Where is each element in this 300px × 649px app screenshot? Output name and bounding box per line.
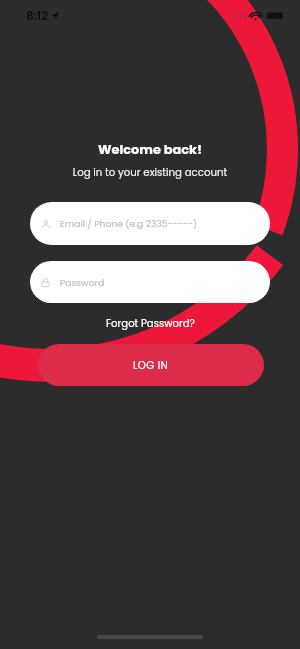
staticText: Log in to your existing account	[0, 165, 300, 179]
button[interactable]: LOG IN	[38, 344, 264, 386]
staticText: LOG IN	[133, 358, 169, 372]
button[interactable]: Password	[30, 261, 270, 303]
staticText: Welcome back!	[0, 140, 300, 158]
staticText: 8:12	[26, 7, 49, 24]
button[interactable]: Email / Phone (e.g 2335-----)	[30, 202, 270, 245]
other: Location	[52, 12, 59, 19]
staticText: Password	[60, 276, 105, 289]
button[interactable]: Forgot Password?	[100, 312, 201, 334]
staticText: Email / Phone (e.g 2335-----)	[60, 217, 198, 230]
